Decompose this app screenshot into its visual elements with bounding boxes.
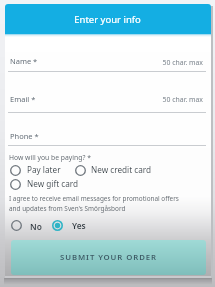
button[interactable] xyxy=(5,90,211,116)
button[interactable] xyxy=(9,218,41,232)
staticText: I agree to receive email messages for pr… xyxy=(9,194,179,203)
staticText: Enter your info xyxy=(0,13,215,26)
button[interactable] xyxy=(5,126,211,152)
staticText: 50 char. max xyxy=(120,58,203,67)
staticText: 50 char. max xyxy=(120,95,203,104)
staticText: New credit card xyxy=(91,164,152,175)
button[interactable] xyxy=(52,218,90,232)
staticText: No xyxy=(30,221,42,232)
button[interactable] xyxy=(8,163,66,176)
staticText: Email * xyxy=(10,94,36,104)
staticText: New gift card xyxy=(27,178,79,189)
button[interactable] xyxy=(66,163,148,176)
button[interactable] xyxy=(5,50,211,76)
button[interactable]: SUBMIT YOUR ORDER xyxy=(11,240,206,275)
button[interactable] xyxy=(8,178,80,191)
staticText: SUBMIT YOUR ORDER xyxy=(60,252,157,263)
staticText: and updates from Sven's Smörgåsbord xyxy=(9,204,126,213)
staticText: Phone * xyxy=(10,131,39,141)
staticText: Yes xyxy=(72,220,86,231)
staticText: How will you be paying? * xyxy=(9,153,91,162)
staticText: Name * xyxy=(10,56,38,66)
staticText: Pay later xyxy=(27,164,61,175)
